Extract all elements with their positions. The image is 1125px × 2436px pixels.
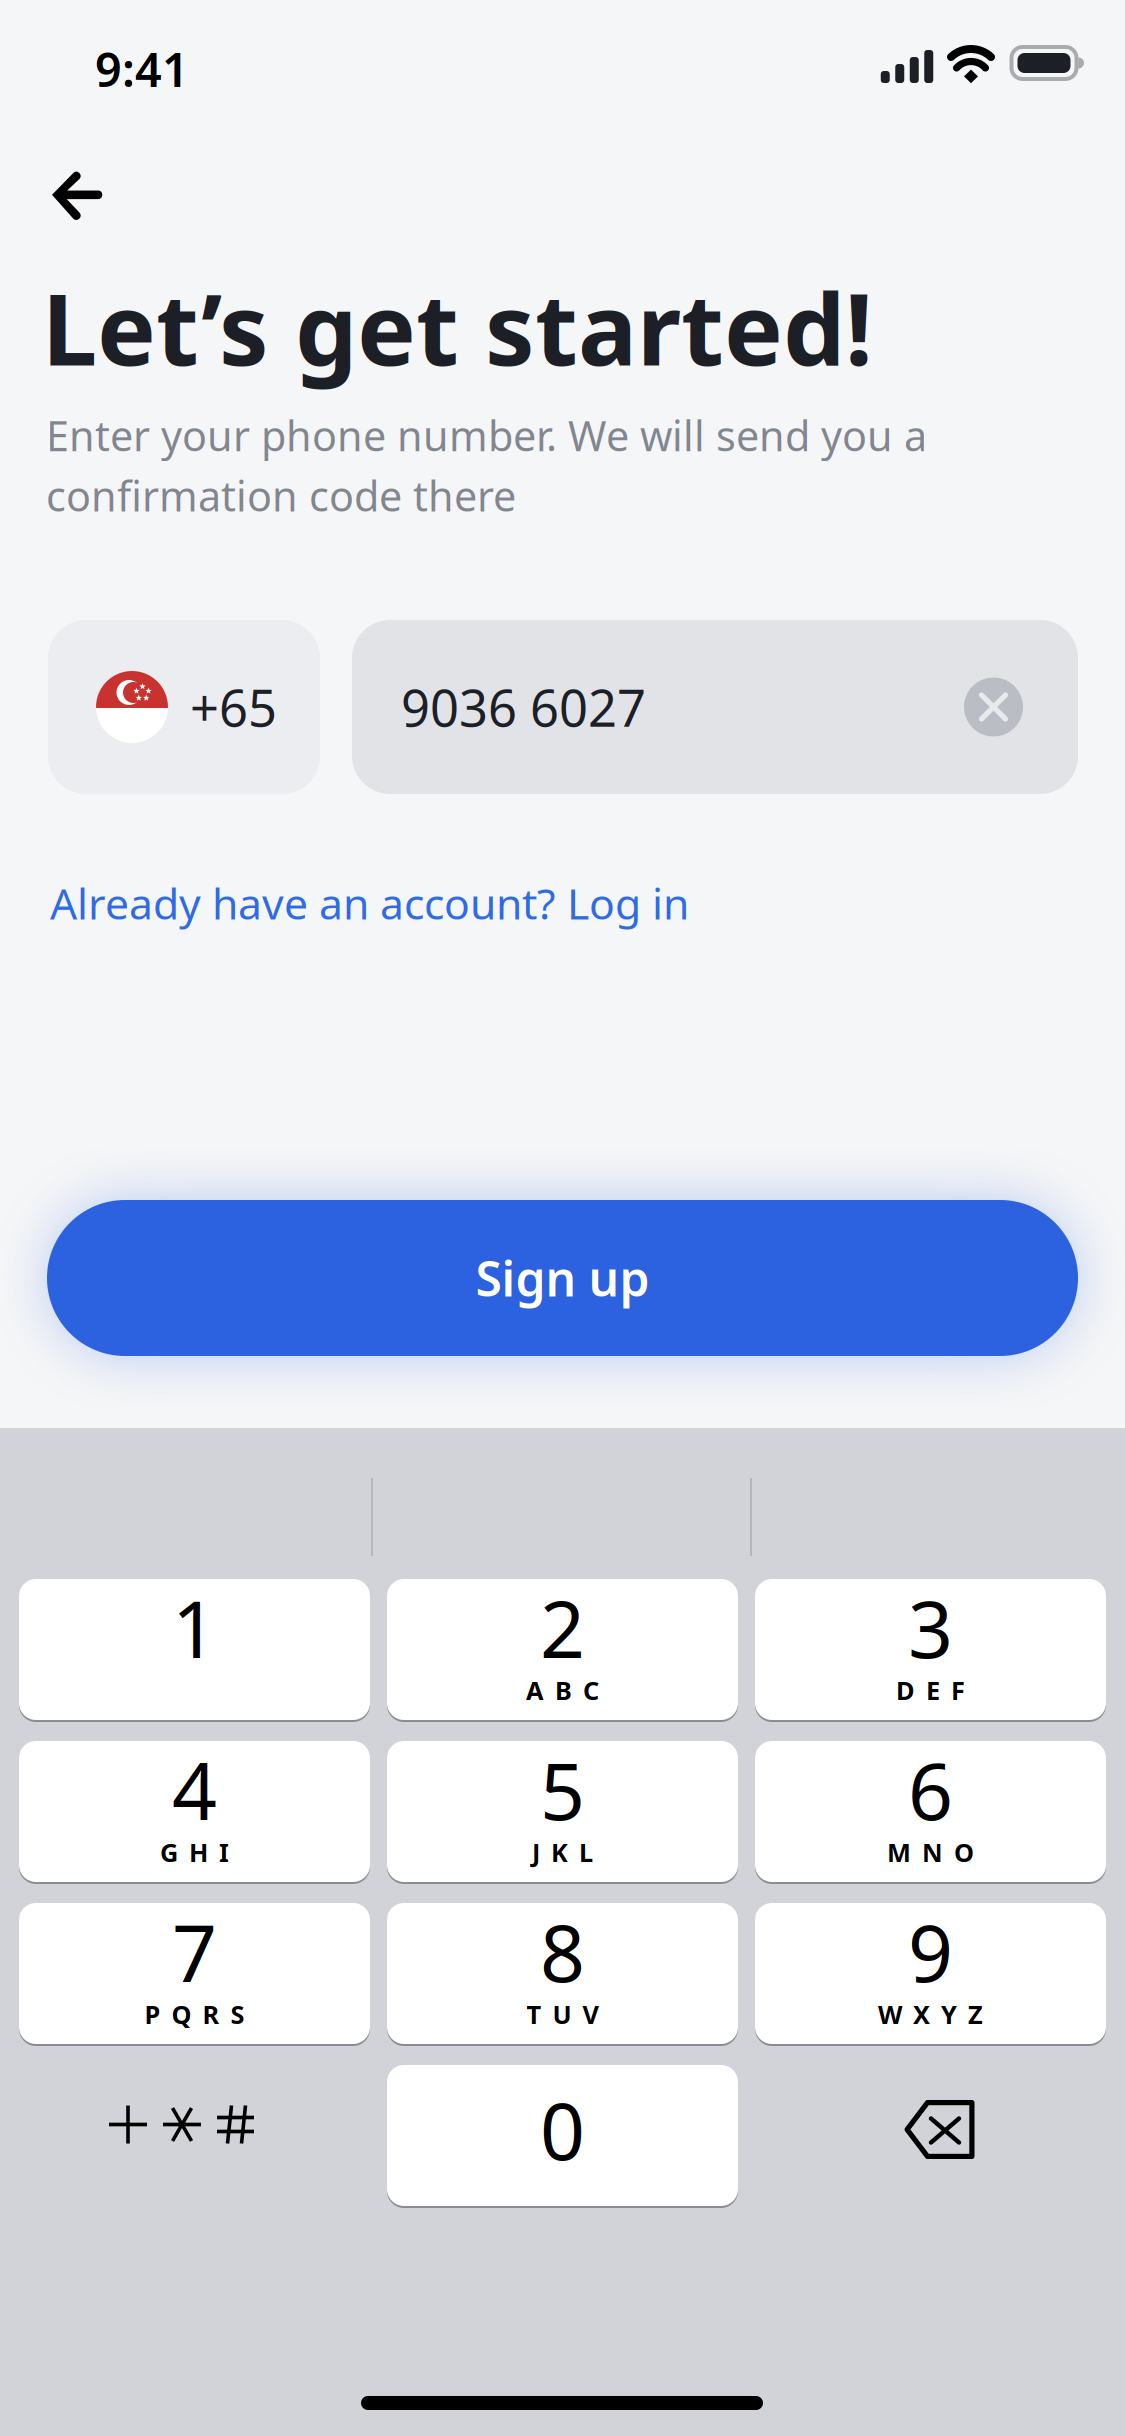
button[interactable]: Plus star hash [19, 2065, 370, 2206]
button[interactable]: Back [16, 140, 140, 252]
staticText: P Q R S [144, 1997, 244, 2031]
staticText: D E F [896, 1673, 965, 1707]
staticText: 4 [172, 1736, 217, 1843]
button[interactable]: 6 [755, 1741, 1106, 1882]
button[interactable]: +65 [48, 620, 320, 794]
staticText: 0 [540, 2076, 585, 2183]
staticText: 3 [908, 1574, 953, 1681]
button[interactable]: Clear text [964, 677, 1023, 736]
staticText: T U V [526, 1997, 598, 2031]
button[interactable]: 5 [387, 1741, 738, 1882]
button[interactable]: 1 [19, 1579, 370, 1720]
button[interactable]: 8 [387, 1903, 738, 2044]
staticText: 5 [540, 1736, 585, 1843]
button[interactable]: Delete [755, 2065, 1106, 2206]
button[interactable]: 0 [387, 2065, 738, 2206]
staticText: 1 [172, 1574, 217, 1681]
staticText: G H I [160, 1835, 229, 1869]
staticText: 6 [908, 1736, 953, 1843]
button[interactable]: 7 [19, 1903, 370, 2044]
staticText: W X Y Z [878, 1997, 983, 2031]
staticText: Sign up [475, 1245, 649, 1311]
staticText: 7 [172, 1898, 217, 2005]
button[interactable]: Already have an account? Log in [50, 876, 710, 930]
staticText: Already have an account? Log in [50, 874, 689, 932]
staticText: 2 [540, 1574, 585, 1681]
staticText: 9 [908, 1898, 953, 2005]
staticText: Enter your phone number. We will send yo… [46, 407, 927, 463]
button[interactable]: 2 [387, 1579, 738, 1720]
staticText: 9036 6027 [401, 672, 646, 741]
staticText: A B C [526, 1673, 599, 1707]
staticText: +65 [190, 672, 277, 741]
staticText: Let’s get started! [42, 260, 873, 394]
staticText: J K L [532, 1835, 593, 1869]
button[interactable]: Sign up [47, 1200, 1078, 1356]
staticText: confirmation code there [46, 467, 516, 524]
button[interactable]: 9 [755, 1903, 1106, 2044]
staticText: M N O [887, 1835, 974, 1869]
button[interactable]: 4 [19, 1741, 370, 1882]
staticText: 9:41 [95, 37, 189, 101]
button[interactable]: 3 [755, 1579, 1106, 1720]
staticText: 8 [540, 1898, 585, 2005]
